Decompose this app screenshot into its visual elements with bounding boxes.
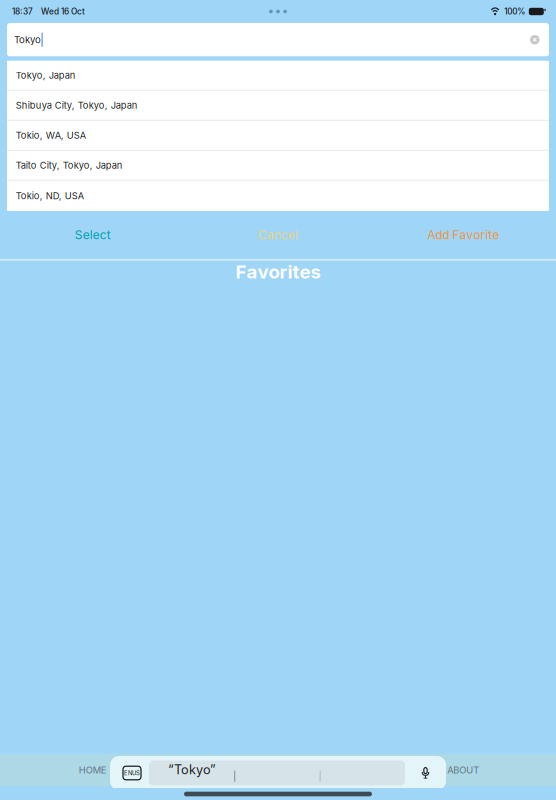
button[interactable]: Keyboard language [123, 766, 141, 780]
staticText: Add Favorite [427, 227, 499, 242]
button[interactable]: Tokyo, Japan [7, 61, 549, 91]
staticText: Cancel [258, 227, 298, 242]
button[interactable] [185, 754, 371, 786]
button[interactable]: Shibuya City, Tokyo, Japan [7, 91, 549, 121]
button[interactable]: Tokio, ND, USA [7, 181, 549, 211]
staticText: ABOUT [447, 764, 479, 776]
staticText: Wed 16 Oct [41, 6, 85, 16]
staticText: Tokyo, Japan [16, 70, 76, 81]
button[interactable]: ABOUT [371, 754, 556, 786]
staticText: Taito City, Tokyo, Japan [16, 160, 123, 171]
button[interactable]: Dictate [413, 760, 437, 785]
staticText: 100% [504, 6, 525, 16]
staticText: Tokyo [14, 34, 41, 45]
button[interactable]: Cancel [185, 217, 371, 253]
button[interactable]: Tokio, WA, USA [7, 121, 549, 151]
button[interactable]: “Tokyo” [149, 760, 405, 785]
staticText: ENUS [124, 769, 140, 777]
staticText: Shibuya City, Tokyo, Japan [16, 100, 138, 111]
staticText: Tokio, ND, USA [16, 190, 84, 201]
staticText: “Tokyo” [168, 762, 216, 777]
staticText: Tokio, WA, USA [16, 130, 86, 141]
button[interactable]: Taito City, Tokyo, Japan [7, 151, 549, 181]
staticText: HOME [79, 764, 107, 776]
staticText: 18:37 [12, 6, 33, 16]
staticText: Select [75, 227, 111, 242]
button[interactable]: HOME [0, 754, 185, 786]
button[interactable]: Add Favorite [371, 217, 556, 253]
staticText: Favorites [235, 260, 320, 283]
button[interactable]: Select [0, 217, 185, 253]
